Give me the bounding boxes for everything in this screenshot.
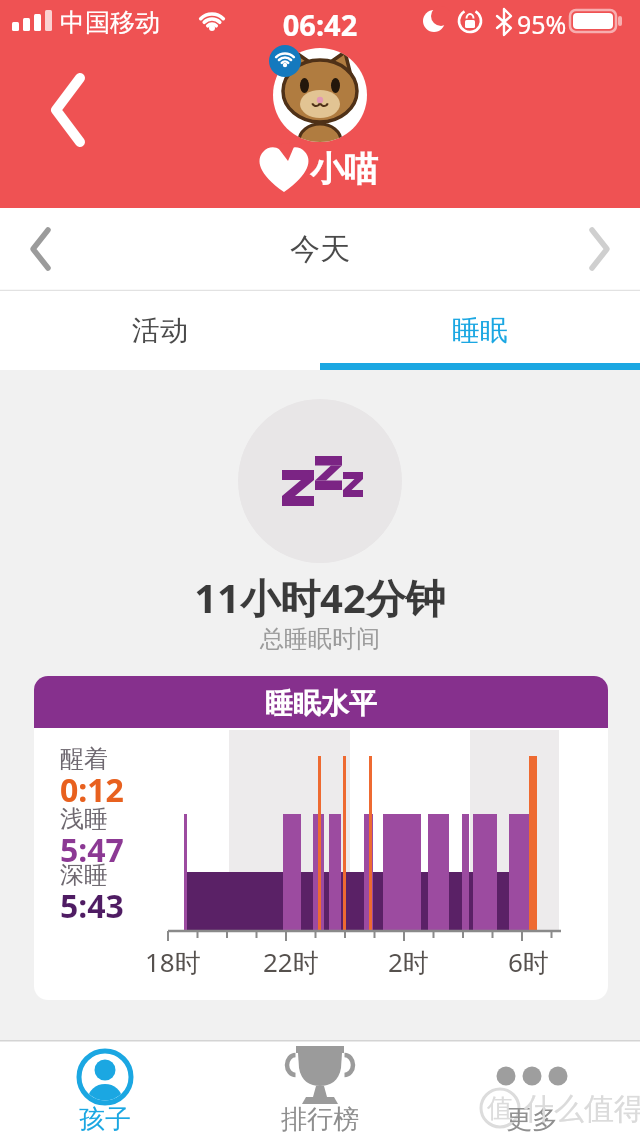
staticText: 18时	[145, 944, 201, 980]
staticText: 11小时42分钟	[0, 570, 640, 625]
staticText: 深睡	[60, 860, 108, 890]
button[interactable]	[452, 1044, 612, 1136]
staticText: 95%	[517, 7, 567, 41]
button[interactable]	[25, 1044, 185, 1136]
button[interactable]	[240, 1044, 400, 1136]
staticText: 浅睡	[60, 804, 108, 834]
staticText: 什么值得买	[524, 1090, 640, 1128]
staticText: 孩子	[79, 1103, 131, 1136]
staticText: 06:42	[0, 5, 640, 44]
staticText: 更多	[506, 1103, 558, 1136]
staticText: 睡眠水平	[34, 686, 608, 721]
staticText: 值	[487, 1092, 513, 1125]
staticText: 22时	[263, 944, 319, 980]
staticText: 5:47	[60, 828, 124, 872]
button[interactable]: 今天	[0, 208, 640, 291]
staticText: 6时	[508, 944, 549, 980]
button[interactable]: 睡眠	[320, 291, 640, 370]
staticText: 睡眠	[452, 313, 508, 348]
staticText: 中国移动	[60, 7, 160, 38]
staticText: 排行榜	[281, 1103, 359, 1136]
staticText: 5:43	[60, 884, 124, 928]
staticText: 活动	[132, 313, 188, 348]
staticText: 醒着	[60, 744, 108, 774]
staticText: 0:12	[60, 768, 124, 812]
staticText: 今天	[0, 230, 640, 268]
staticText: 总睡眠时间	[0, 624, 640, 654]
button[interactable]: 活动	[0, 291, 320, 370]
button[interactable]	[273, 48, 367, 142]
staticText: 2时	[388, 944, 429, 980]
staticText: 小喵	[310, 148, 378, 191]
